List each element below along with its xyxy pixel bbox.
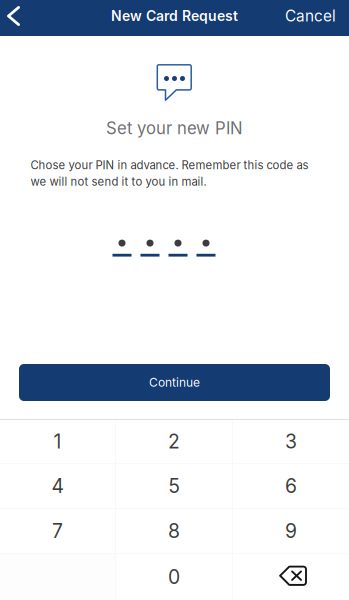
staticText: 6 bbox=[285, 474, 297, 498]
button[interactable]: 0 bbox=[116, 554, 232, 600]
button[interactable]: 9 bbox=[233, 509, 349, 553]
button[interactable]: 1 bbox=[0, 420, 115, 463]
staticText: 0 bbox=[168, 565, 180, 589]
staticText: 3 bbox=[285, 430, 297, 453]
button[interactable]: 2 bbox=[116, 420, 232, 463]
staticText: Continue bbox=[149, 375, 200, 390]
button[interactable]: Delete bbox=[233, 554, 349, 600]
button[interactable]: 8 bbox=[116, 509, 232, 553]
button[interactable]: Continue bbox=[19, 364, 330, 401]
button[interactable]: Back bbox=[0, 0, 32, 34]
button[interactable]: 7 bbox=[0, 509, 115, 553]
staticText: Chose your PIN in advance. Remember this… bbox=[30, 158, 308, 189]
staticText: 4 bbox=[51, 474, 63, 498]
button[interactable]: Cancel bbox=[271, 0, 349, 34]
staticText: 5 bbox=[168, 474, 179, 498]
staticText: Cancel bbox=[285, 7, 336, 25]
button[interactable]: 6 bbox=[233, 464, 349, 508]
staticText: Set your new PIN bbox=[106, 118, 243, 138]
staticText: 1 bbox=[53, 430, 61, 453]
staticText: 7 bbox=[52, 519, 63, 543]
button[interactable]: 4 bbox=[0, 464, 115, 508]
staticText: New Card Request bbox=[111, 7, 238, 24]
staticText: 9 bbox=[285, 519, 297, 543]
staticText: 8 bbox=[168, 519, 180, 543]
staticText: 2 bbox=[168, 430, 180, 453]
button[interactable]: 5 bbox=[116, 464, 232, 508]
button[interactable]: 3 bbox=[233, 420, 349, 463]
